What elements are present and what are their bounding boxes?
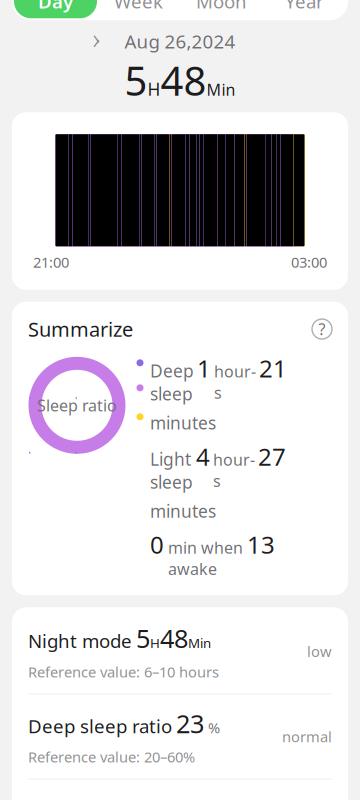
button[interactable]: Day (14, 0, 97, 18)
staticText: hours (213, 449, 255, 491)
staticText: Min (206, 79, 235, 100)
staticText: 03:00 (291, 252, 327, 272)
button[interactable]: Previous day (82, 27, 110, 55)
staticText: 0 (150, 528, 164, 560)
staticText: Moon (196, 0, 247, 14)
staticText: 1 (197, 352, 211, 384)
staticText: Sleep ratio (37, 395, 117, 416)
staticText: Reference value: 6–10 hours (28, 662, 219, 681)
staticText: 21:00 (33, 252, 69, 272)
button[interactable]: Moon (180, 0, 263, 18)
staticText: 23 (176, 706, 204, 740)
staticText: 27 (258, 440, 286, 472)
staticText: minutes (150, 499, 216, 522)
staticText: Summarize (28, 316, 133, 342)
staticText: hours (214, 361, 256, 403)
staticText: Light sleep (150, 447, 193, 493)
staticText: Deep sleep ratio (28, 713, 172, 738)
staticText: Min (188, 634, 211, 652)
staticText: Day (38, 0, 73, 14)
button[interactable]: Week (97, 0, 180, 18)
staticText: Deep sleep (150, 359, 194, 405)
staticText: Night mode (28, 628, 132, 653)
staticText: Week (114, 0, 163, 14)
staticText: 5 (136, 621, 150, 655)
staticText: Year (285, 0, 324, 14)
staticText: 21 (259, 352, 287, 384)
staticText: H (150, 634, 160, 652)
staticText: min when awake (168, 537, 243, 579)
staticText: Reference value: 20–60% (28, 747, 195, 767)
staticText: Aug 26,2024 (124, 29, 235, 54)
button[interactable]: Help (312, 319, 332, 339)
staticText: % (208, 718, 220, 737)
staticText: H (147, 78, 160, 101)
staticText: 5 (124, 54, 147, 107)
staticText: normal (282, 727, 332, 746)
staticText: 4 (196, 440, 210, 472)
button[interactable]: Year (263, 0, 346, 18)
staticText: minutes (150, 411, 216, 434)
staticText: 48 (160, 54, 206, 107)
staticText: low (307, 642, 332, 661)
staticText: 48 (160, 621, 188, 655)
staticText: ? (318, 318, 325, 340)
staticText: 13 (247, 528, 275, 560)
